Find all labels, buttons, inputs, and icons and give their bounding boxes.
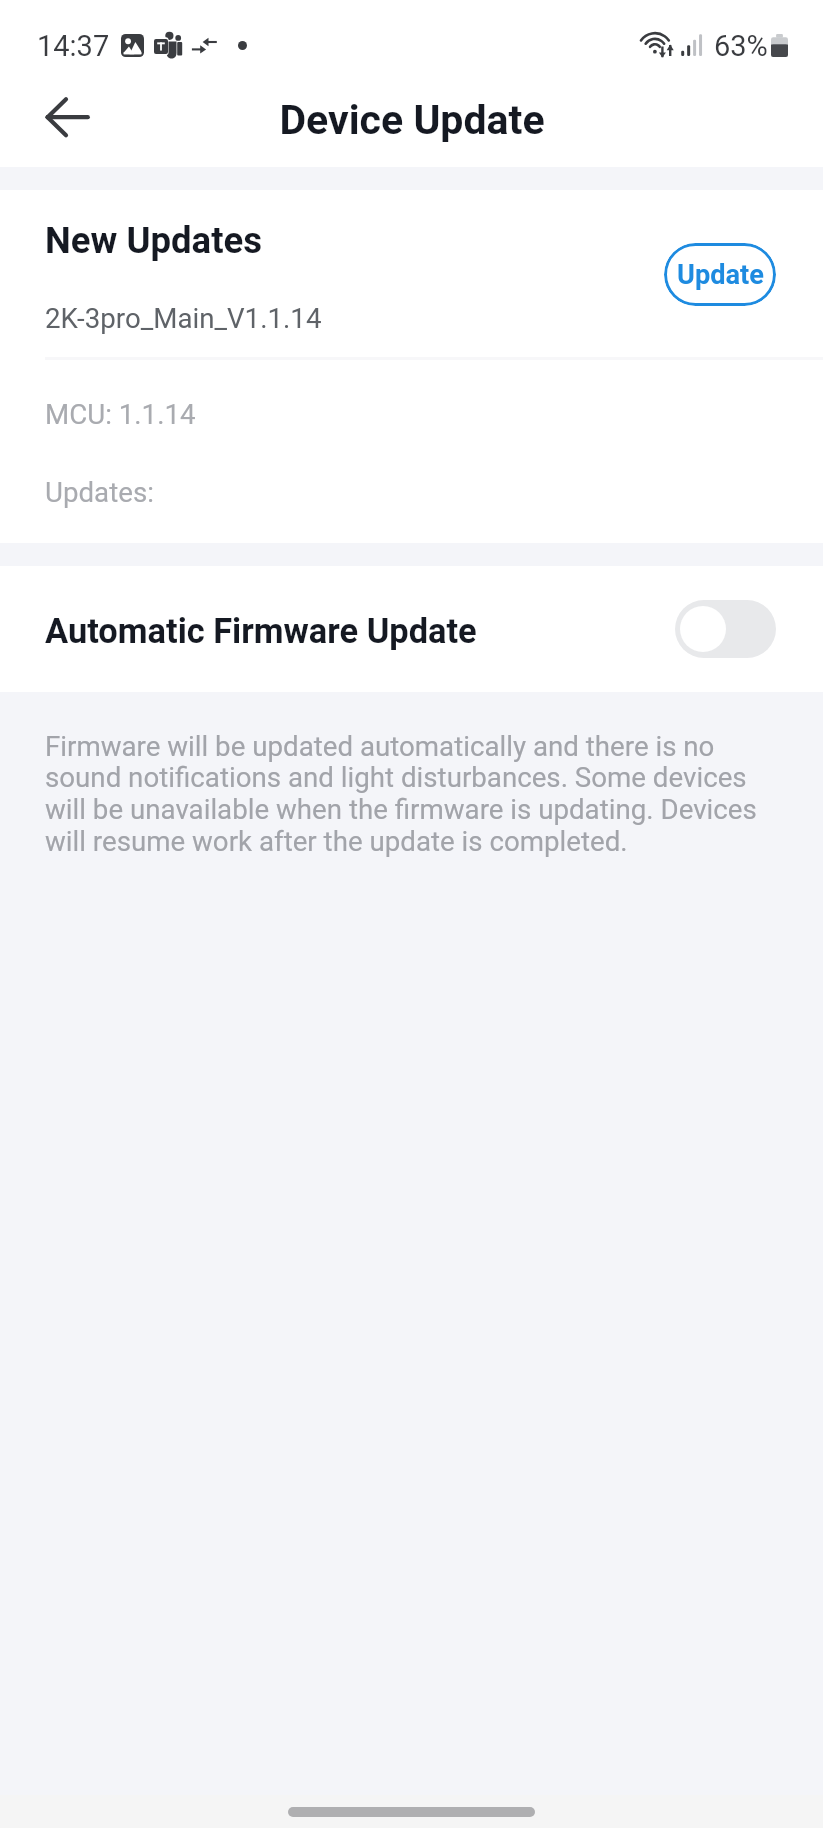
staticText: Automatic Firmware Update [45, 611, 477, 651]
staticText: Device Update [279, 96, 545, 144]
button[interactable]: Automatic Firmware Update toggle [675, 600, 776, 658]
staticText: 14:37 [37, 29, 110, 63]
staticText: Update [677, 259, 764, 291]
staticText: Updates: [45, 476, 154, 508]
button[interactable]: Back [26, 76, 109, 159]
staticText: Firmware will be updated automatically a… [45, 730, 775, 858]
button[interactable]: Update [664, 243, 776, 306]
staticText: MCU: 1.1.14 [45, 398, 196, 430]
button[interactable]: Automatic Firmware Update [0, 566, 823, 692]
staticText: 2K-3pro_Main_V1.1.14 [45, 302, 322, 334]
staticText: 63% [714, 29, 768, 63]
staticText: New Updates [45, 219, 263, 262]
